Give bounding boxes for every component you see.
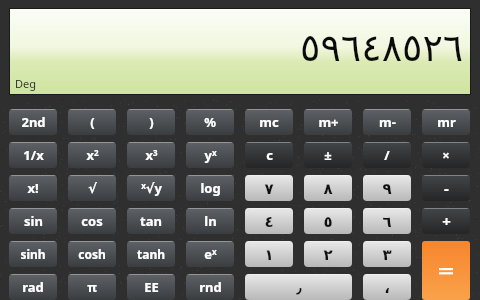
button[interactable]: Comma: [363, 274, 411, 300]
button[interactable]: Plus minus: [304, 142, 352, 168]
button[interactable]: ٥: [304, 208, 352, 234]
staticText: rad: [22, 278, 44, 296]
staticText: ٢: [323, 246, 333, 263]
staticText: 2nd: [21, 113, 46, 131]
button[interactable]: yx: [186, 142, 234, 168]
button[interactable]: ٨: [304, 175, 352, 201]
button[interactable]: log: [186, 175, 234, 201]
staticText: cosh: [78, 246, 106, 262]
button[interactable]: x!: [9, 175, 57, 201]
staticText: EE: [144, 278, 159, 296]
button[interactable]: (: [68, 109, 116, 135]
button[interactable]: x3: [127, 142, 175, 168]
staticText: ٧: [264, 180, 274, 197]
staticText: ex: [204, 245, 217, 263]
staticText: /: [384, 146, 390, 164]
staticText: ): [149, 113, 154, 131]
staticText: (: [90, 113, 95, 131]
button[interactable]: Multiply: [422, 142, 470, 168]
staticText: c: [266, 146, 273, 164]
staticText: ٥: [323, 213, 333, 230]
staticText: yx: [204, 146, 217, 164]
button[interactable]: ١: [245, 241, 293, 267]
staticText: ٤: [264, 213, 274, 230]
staticText: ln: [204, 212, 217, 230]
staticText: sinh: [20, 246, 46, 262]
button[interactable]: sin: [9, 208, 57, 234]
staticText: -: [444, 178, 449, 198]
button[interactable]: cos: [68, 208, 116, 234]
button[interactable]: x2: [68, 142, 116, 168]
staticText: Deg: [15, 76, 36, 91]
button[interactable]: tanh: [127, 241, 175, 267]
button[interactable]: ٣: [363, 241, 411, 267]
button[interactable]: tan: [127, 208, 175, 234]
button[interactable]: ٧: [245, 175, 293, 201]
staticText: ±: [324, 146, 332, 164]
button[interactable]: Clear: [245, 142, 293, 168]
staticText: %: [204, 113, 216, 131]
button[interactable]: m+: [304, 109, 352, 135]
button[interactable]: 2nd: [9, 109, 57, 135]
button[interactable]: %: [186, 109, 234, 135]
staticText: ٨: [323, 180, 333, 197]
button[interactable]: Minus: [422, 175, 470, 201]
button[interactable]: EE: [127, 274, 175, 300]
staticText: x!: [27, 179, 39, 197]
button[interactable]: ex: [186, 241, 234, 267]
staticText: log: [200, 179, 221, 197]
staticText: ٣: [382, 246, 392, 263]
staticText: ٫: [296, 279, 302, 296]
button[interactable]: √: [68, 175, 116, 201]
button[interactable]: ٢: [304, 241, 352, 267]
button[interactable]: mc: [245, 109, 293, 135]
button[interactable]: rad: [9, 274, 57, 300]
staticText: tanh: [137, 246, 165, 262]
staticText: π: [87, 278, 97, 296]
button[interactable]: Decimal point: [245, 274, 352, 300]
staticText: cos: [81, 212, 103, 230]
staticText: ٦: [382, 213, 392, 230]
staticText: sin: [24, 212, 43, 230]
staticText: rnd: [199, 278, 222, 296]
button[interactable]: π: [68, 274, 116, 300]
staticText: mr: [437, 113, 456, 131]
staticText: 1/x: [23, 146, 44, 164]
staticText: ٩: [382, 180, 392, 197]
staticText: √: [88, 181, 97, 196]
staticText: ،: [384, 279, 390, 296]
button[interactable]: Plus: [422, 208, 470, 234]
button[interactable]: sinh: [9, 241, 57, 267]
button[interactable]: rnd: [186, 274, 234, 300]
button[interactable]: ٩: [363, 175, 411, 201]
button[interactable]: m-: [363, 109, 411, 135]
button[interactable]: ٦: [363, 208, 411, 234]
button[interactable]: mr: [422, 109, 470, 135]
staticText: x√y: [141, 179, 162, 197]
button[interactable]: ln: [186, 208, 234, 234]
button[interactable]: Divide: [363, 142, 411, 168]
staticText: x2: [86, 146, 99, 164]
staticText: mc: [259, 113, 279, 131]
button[interactable]: Equals: [422, 241, 470, 300]
button[interactable]: cosh: [68, 241, 116, 267]
staticText: x3: [145, 146, 158, 164]
button[interactable]: ٤: [245, 208, 293, 234]
staticText: tan: [140, 212, 162, 230]
staticText: ١: [264, 246, 274, 263]
button[interactable]: ): [127, 109, 175, 135]
staticText: +: [442, 211, 451, 231]
button[interactable]: 1/x: [9, 142, 57, 168]
staticText: m+: [318, 113, 339, 131]
staticText: ٥٩٦٤٨٥٢٦: [300, 26, 464, 70]
button[interactable]: x√y: [127, 175, 175, 201]
staticText: ×: [442, 146, 450, 164]
staticText: m-: [379, 113, 396, 131]
